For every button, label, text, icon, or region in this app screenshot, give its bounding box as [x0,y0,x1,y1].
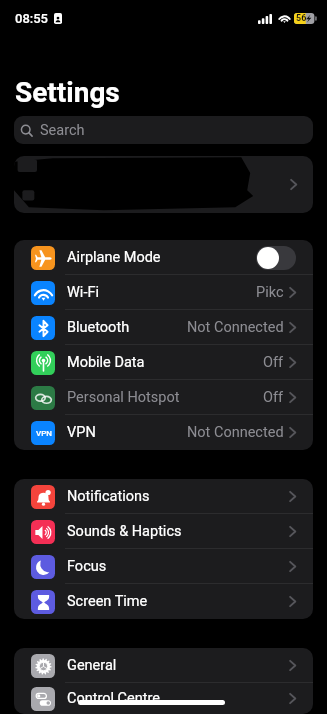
staticText: Off [263,389,284,406]
staticText: Bluetooth [67,319,130,336]
button[interactable]: Sounds & Haptics [14,514,313,549]
staticText: Sounds & Haptics [67,523,182,540]
button[interactable]: General [14,648,313,683]
staticText: Pikc [256,284,284,301]
button[interactable]: Bluetooth [14,310,313,345]
button[interactable]: Focus [14,549,313,584]
button[interactable]: Notifications [14,479,313,514]
staticText: Search [40,122,85,139]
other: Apple ID [290,179,297,190]
staticText: Control Centre [67,690,160,707]
staticText: VPN [36,429,52,438]
button[interactable]: Screen Time [14,584,313,619]
button[interactable]: Mobile Data [14,345,313,380]
staticText: Settings [15,76,120,109]
staticText: Airplane Mode [67,249,161,266]
staticText: General [67,657,117,674]
staticText: Mobile Data [67,354,145,371]
staticText: Notifications [67,488,150,505]
button[interactable]: Airplane Mode [14,240,313,275]
staticText: Not Connected [187,424,284,441]
staticText: VPN [67,424,96,441]
staticText: Not Connected [187,319,284,336]
button[interactable]: Wi-Fi [14,275,313,310]
staticText: Screen Time [67,593,148,610]
staticText: 56 [296,13,307,24]
button[interactable]: Search [14,116,313,144]
staticText: Off [263,354,284,371]
staticText: Focus [67,558,107,575]
button[interactable]: VPN [14,415,313,450]
staticText: Wi-Fi [67,284,99,301]
staticText: 08:55 [15,11,49,26]
button[interactable]: Control Centre [14,683,313,714]
staticText: Personal Hotspot [67,389,180,406]
button[interactable]: Personal Hotspot [14,380,313,415]
button[interactable]: Apple ID [14,156,313,213]
